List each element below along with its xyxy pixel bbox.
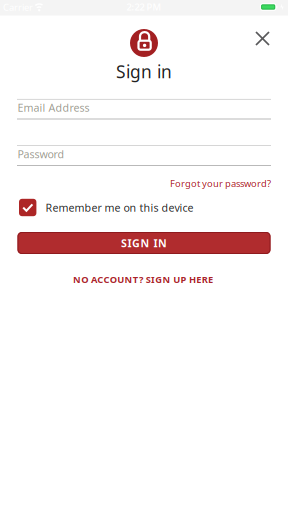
staticText: NO ACCOUNT? SIGN UP HERE xyxy=(73,273,213,286)
button[interactable]: SIGN IN xyxy=(17,232,270,254)
button[interactable]: NO ACCOUNT? SIGN UP HERE xyxy=(73,273,213,286)
staticText: SIGN IN xyxy=(121,236,167,250)
staticText: Sign in xyxy=(116,60,172,83)
button[interactable]: Close xyxy=(248,24,276,52)
staticText: Remember me on this device xyxy=(45,200,193,215)
textField[interactable]: Email Address xyxy=(17,100,270,115)
button[interactable]: Forgot your password? xyxy=(170,177,271,190)
staticText: 2:22 PM xyxy=(126,1,161,13)
textField[interactable]: Password xyxy=(17,147,270,161)
staticText: Password xyxy=(17,147,64,161)
button[interactable]: Remember me on this device xyxy=(19,199,193,216)
staticText: Forgot your password? xyxy=(170,177,271,190)
staticText: Email Address xyxy=(17,100,89,115)
